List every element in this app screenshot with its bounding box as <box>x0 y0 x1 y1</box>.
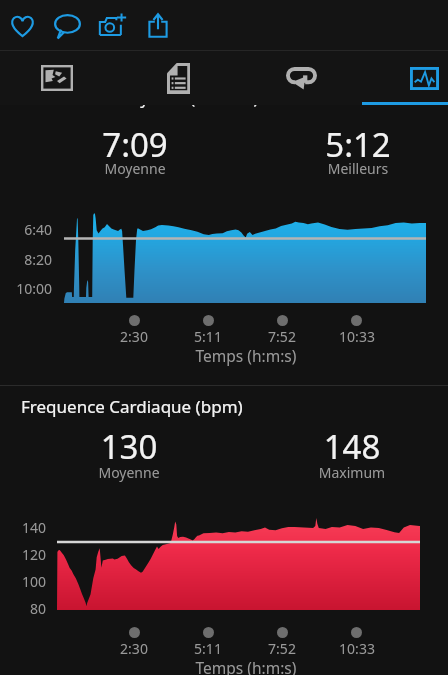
staticText: Meilleurs <box>278 159 438 178</box>
staticText: 7:52 <box>242 639 322 658</box>
button[interactable]: Comment <box>45 0 90 51</box>
staticText: 130 <box>49 424 209 469</box>
staticText: 6:40 <box>0 220 52 239</box>
staticText: Moyenne <box>49 463 209 482</box>
staticText: 2:30 <box>94 327 174 346</box>
staticText: 10:33 <box>317 327 397 346</box>
button[interactable]: Map <box>0 51 118 105</box>
staticText: 5:11 <box>168 639 248 658</box>
staticText: Maximum <box>272 463 432 482</box>
staticText: 2:30 <box>94 639 174 658</box>
staticText: Allure moyenne (min/km) <box>68 87 259 109</box>
staticText: 120 <box>0 545 46 564</box>
button[interactable]: Laps <box>240 51 363 105</box>
staticText: 8:20 <box>0 250 52 269</box>
button[interactable]: Share <box>135 0 180 51</box>
button[interactable]: Add photo <box>90 0 135 51</box>
staticText: 140 <box>0 518 46 537</box>
button[interactable]: Charts <box>363 51 448 105</box>
staticText: Temps (h:m:s) <box>146 345 346 366</box>
staticText: 5:11 <box>168 327 248 346</box>
staticText: 10:00 <box>0 279 52 298</box>
staticText: 100 <box>0 572 46 591</box>
staticText: 10:33 <box>317 639 397 658</box>
staticText: 148 <box>272 424 432 469</box>
button[interactable]: Details <box>117 51 240 105</box>
staticText: 7:09 <box>55 122 215 167</box>
staticText: Frequence Cardiaque (bpm) <box>21 395 243 418</box>
button[interactable]: Like <box>0 0 45 51</box>
staticText: Moyenne <box>55 159 215 178</box>
staticText: 80 <box>0 599 46 618</box>
staticText: Temps (h:m:s) <box>146 657 346 675</box>
staticText: 5:12 <box>278 122 438 167</box>
staticText: 7:52 <box>242 327 322 346</box>
